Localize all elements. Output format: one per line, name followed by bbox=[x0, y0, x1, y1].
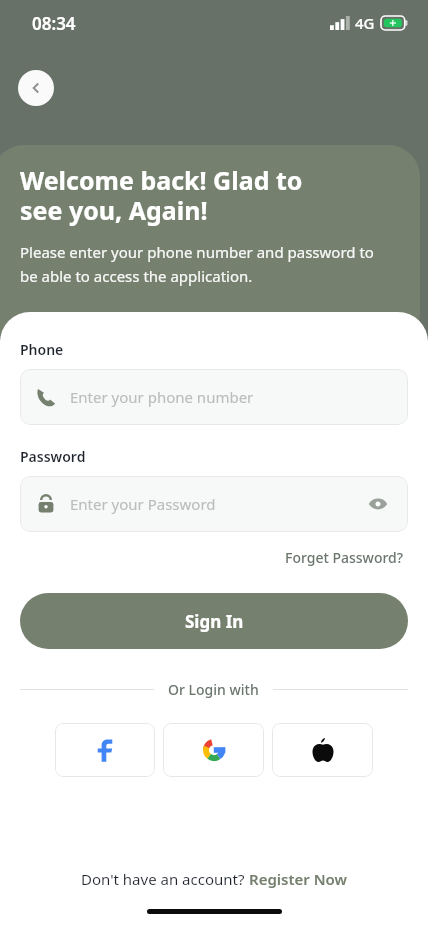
staticText: Sign In bbox=[185, 610, 244, 633]
staticText: 4G bbox=[355, 13, 375, 33]
staticText: Please enter your phone number and passw… bbox=[20, 242, 374, 286]
staticText: Or Login with bbox=[168, 680, 259, 699]
staticText: Welcome back! Glad to see you, Again! bbox=[20, 163, 303, 228]
button[interactable]: Back bbox=[18, 70, 54, 106]
staticText: 08:34 bbox=[32, 12, 76, 35]
button[interactable]: Sign in with Apple bbox=[272, 723, 373, 777]
button[interactable]: Show password bbox=[364, 490, 392, 518]
button[interactable]: Enter your Password bbox=[20, 476, 408, 532]
button[interactable]: Forget Password? bbox=[281, 544, 408, 571]
button[interactable]: Sign In bbox=[20, 593, 408, 649]
button[interactable]: Register Now bbox=[249, 869, 348, 889]
button[interactable]: Enter your phone number bbox=[20, 369, 408, 425]
staticText: Don't have an account? bbox=[81, 869, 249, 889]
staticText: Password bbox=[20, 447, 86, 466]
staticText: Enter your phone number bbox=[70, 387, 254, 407]
button[interactable]: Sign in with Facebook bbox=[55, 723, 155, 777]
staticText: Phone bbox=[20, 340, 64, 359]
staticText: Enter your Password bbox=[70, 494, 216, 514]
button[interactable]: Sign in with Google bbox=[163, 723, 264, 777]
